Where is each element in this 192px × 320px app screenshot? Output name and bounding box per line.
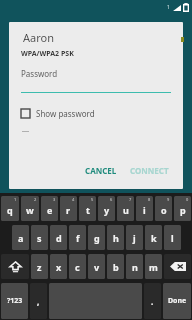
staticText: 5 xyxy=(91,197,94,202)
staticText: 3 xyxy=(53,197,56,202)
staticText: 2 xyxy=(34,197,37,202)
staticText: q xyxy=(7,204,13,216)
button[interactable]: ?123 xyxy=(1,283,28,319)
staticText: h xyxy=(113,232,119,244)
staticText: n xyxy=(132,261,138,273)
button[interactable]: a xyxy=(12,225,29,250)
staticText: Aaron xyxy=(23,30,54,45)
button[interactable]: n xyxy=(126,254,143,279)
staticText: j xyxy=(133,232,136,244)
staticText: f xyxy=(76,232,80,244)
button[interactable]: 5 xyxy=(79,196,96,221)
button[interactable]: s xyxy=(31,225,48,250)
button[interactable]: 3 xyxy=(41,196,58,221)
button[interactable]: l xyxy=(164,225,181,250)
button[interactable]: c xyxy=(69,254,86,279)
staticText: a xyxy=(18,232,24,244)
staticText: t xyxy=(86,204,90,216)
staticText: Password xyxy=(21,68,58,79)
button[interactable]: k xyxy=(145,225,162,250)
staticText: s xyxy=(37,232,42,244)
button[interactable]: j xyxy=(126,225,143,250)
staticText: c xyxy=(75,261,80,273)
staticText: w xyxy=(26,204,34,216)
button[interactable]: h xyxy=(107,225,124,250)
button[interactable]: m xyxy=(145,254,162,279)
button[interactable]: g xyxy=(88,225,105,250)
button[interactable]: d xyxy=(50,225,67,250)
staticText: 4 xyxy=(72,197,75,202)
staticText: , xyxy=(37,296,40,307)
staticText: Done xyxy=(168,296,187,306)
staticText: 9 xyxy=(167,197,170,202)
button[interactable]: . xyxy=(144,283,161,319)
button[interactable]: Show password xyxy=(21,108,95,119)
button[interactable]: , xyxy=(30,283,47,319)
button[interactable]: CANCEL xyxy=(81,162,121,179)
staticText: k xyxy=(151,232,157,244)
staticText: l xyxy=(171,232,174,244)
button[interactable]: Delete xyxy=(164,254,191,279)
staticText: 1 xyxy=(14,197,17,202)
staticText: o xyxy=(161,204,167,216)
staticText: 1 xyxy=(167,4,170,11)
button[interactable]: v xyxy=(88,254,105,279)
staticText: e xyxy=(47,204,53,216)
button[interactable]: 4 xyxy=(60,196,77,221)
staticText: p xyxy=(180,204,186,216)
button[interactable]: 9 xyxy=(155,196,172,221)
staticText: v xyxy=(94,261,100,273)
staticText: r xyxy=(66,204,71,216)
button[interactable]: 1 xyxy=(1,196,19,221)
staticText: y xyxy=(104,204,110,216)
staticText: CANCEL xyxy=(85,165,117,176)
staticText: u xyxy=(123,204,129,216)
button[interactable]: 6 xyxy=(98,196,115,221)
staticText: . xyxy=(151,296,154,307)
staticText: m xyxy=(149,261,158,273)
staticText: x xyxy=(56,261,62,273)
button[interactable]: 7 xyxy=(117,196,134,221)
staticText: WPA/WPA2 PSK xyxy=(21,49,74,59)
staticText: CONNECT xyxy=(130,165,169,176)
staticText: Show password xyxy=(36,108,95,119)
staticText: g xyxy=(94,232,100,244)
staticText: 7 xyxy=(129,197,132,202)
button[interactable]: CONNECT xyxy=(126,162,173,179)
button[interactable]: Shift xyxy=(1,254,29,279)
button[interactable]: x xyxy=(50,254,67,279)
staticText: z xyxy=(37,261,42,273)
staticText: b xyxy=(113,261,119,273)
staticText: 8 xyxy=(148,197,151,202)
button[interactable]: f xyxy=(69,225,86,250)
button[interactable]: z xyxy=(31,254,48,279)
staticText: ?123 xyxy=(7,296,23,306)
staticText: 0 xyxy=(186,197,189,202)
button[interactable]: 2 xyxy=(21,196,39,221)
button[interactable]: 8 xyxy=(136,196,153,221)
staticText: i xyxy=(143,204,146,216)
button[interactable]: 0 xyxy=(174,196,191,221)
button[interactable]: Done xyxy=(163,283,191,319)
button[interactable]: b xyxy=(107,254,124,279)
staticText: d xyxy=(56,232,62,244)
staticText: 6 xyxy=(110,197,113,202)
